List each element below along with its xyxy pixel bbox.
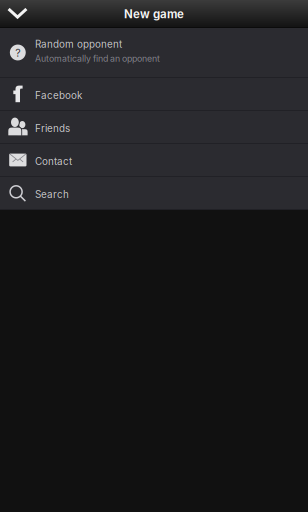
staticText: Friends xyxy=(35,122,70,134)
staticText: New game xyxy=(124,7,184,21)
staticText: Facebook xyxy=(35,89,82,101)
staticText: Contact xyxy=(35,155,72,167)
staticText: Search xyxy=(35,188,69,200)
button[interactable]: Contact xyxy=(0,144,308,177)
staticText: Automatically find an opponent xyxy=(35,53,160,64)
button[interactable]: ? xyxy=(0,28,308,78)
button[interactable]: Dismiss xyxy=(0,0,46,28)
button[interactable]: Search xyxy=(0,177,308,210)
button[interactable]: Friends xyxy=(0,111,308,144)
button[interactable]: Facebook xyxy=(0,78,308,111)
staticText: Random opponent xyxy=(35,38,122,50)
staticText: ? xyxy=(15,46,20,59)
